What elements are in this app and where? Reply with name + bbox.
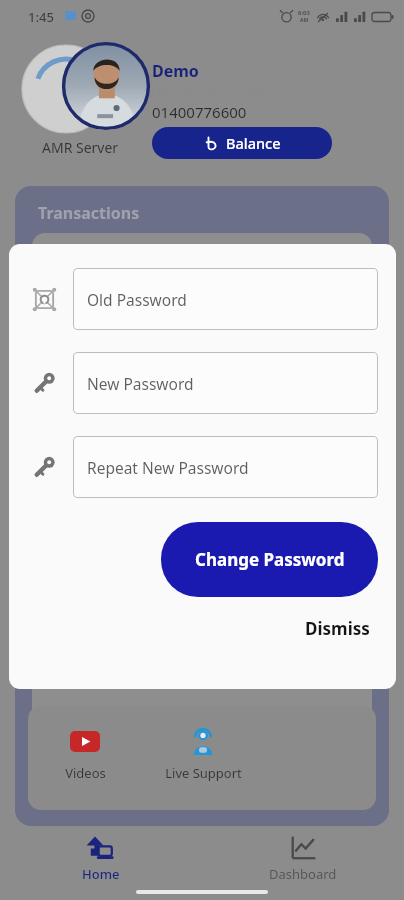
button[interactable]: Repeat New Password <box>73 436 378 498</box>
staticText: 6:03 <box>298 9 310 17</box>
staticText: Transactions <box>38 202 140 224</box>
staticText: Dismiss <box>305 617 370 640</box>
staticText: Live Support <box>165 764 242 782</box>
staticText: Change Password <box>195 548 345 571</box>
staticText: Old Password <box>87 289 187 310</box>
staticText: Videos <box>65 764 106 782</box>
button[interactable]: AMR Server <box>14 42 146 157</box>
staticText: 01400776600 <box>152 102 247 122</box>
staticText: Balance <box>226 133 281 153</box>
staticText: Home <box>82 865 120 883</box>
button[interactable]: Live Support <box>160 720 246 788</box>
staticText: Dashboard <box>269 865 337 883</box>
staticText: Repeat New Password <box>87 457 249 478</box>
button[interactable]: Old Password <box>73 268 378 330</box>
button[interactable]: Home <box>0 826 202 892</box>
button[interactable]: New Password <box>73 352 378 414</box>
button[interactable]: Dismiss <box>297 611 378 646</box>
button[interactable]: Videos <box>42 720 128 788</box>
button[interactable]: Balance <box>152 127 332 159</box>
staticText: Demo <box>152 60 199 82</box>
staticText: AM <box>300 17 309 24</box>
button[interactable]: Dashboard <box>202 826 404 892</box>
staticText: 1:45 <box>28 8 54 26</box>
staticText: AMR Server <box>42 138 119 157</box>
staticText: New Password <box>87 373 194 394</box>
button[interactable]: Change Password <box>161 522 378 597</box>
